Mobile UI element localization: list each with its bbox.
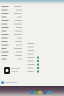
button[interactable] [0,0,64,96]
button[interactable] [0,0,64,96]
button[interactable] [0,0,64,96]
button[interactable] [0,0,64,96]
button[interactable]: App [0,0,64,96]
button[interactable] [0,0,64,96]
button[interactable] [0,0,64,96]
button[interactable]: App [0,0,64,96]
button[interactable] [0,0,64,96]
button[interactable] [0,0,64,96]
button[interactable] [0,0,64,96]
button[interactable] [0,0,64,96]
button[interactable] [0,0,64,96]
button[interactable] [0,0,64,96]
button[interactable] [0,0,64,96]
button[interactable] [0,0,64,96]
button[interactable]: App [0,0,64,96]
button[interactable] [0,0,64,96]
button[interactable]: App [0,0,64,96]
button[interactable]: App icon [0,0,64,96]
button[interactable] [0,0,64,96]
button[interactable] [0,0,64,96]
button[interactable] [0,0,64,96]
button[interactable]: App [0,0,64,96]
button[interactable] [0,0,64,96]
button[interactable] [0,0,64,96]
button[interactable] [0,0,64,96]
button[interactable] [0,0,64,96]
button[interactable] [0,0,64,96]
button[interactable] [0,0,64,96]
button[interactable] [0,0,64,96]
button[interactable] [0,0,64,96]
